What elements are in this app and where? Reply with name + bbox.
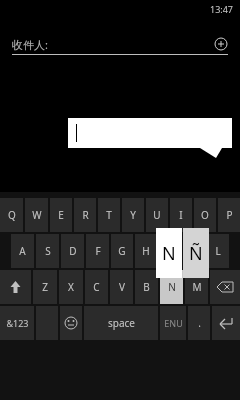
- button[interactable]: K: [183, 234, 205, 268]
- staticText: 13:47: [210, 3, 234, 15]
- staticText: T: [106, 208, 112, 222]
- button[interactable]: B: [135, 270, 158, 304]
- button[interactable]: L: [207, 234, 229, 268]
- staticText: H: [142, 244, 150, 258]
- staticText: L: [215, 244, 221, 258]
- staticText: R: [82, 208, 89, 222]
- staticText: M: [192, 280, 202, 294]
- button[interactable]: Backspace: [210, 270, 240, 304]
- staticText: O: [201, 208, 209, 222]
- button[interactable]: Q: [0, 198, 23, 232]
- button[interactable]: .: [188, 306, 210, 340]
- button[interactable]: R: [74, 198, 96, 232]
- staticText: G: [118, 244, 126, 258]
- staticText: space: [108, 316, 135, 330]
- staticText: U: [153, 208, 161, 222]
- button[interactable]: P: [218, 198, 240, 232]
- button[interactable]: Shift: [0, 270, 31, 304]
- button[interactable]: E: [50, 198, 72, 232]
- staticText: .: [198, 316, 201, 330]
- button[interactable]: U: [146, 198, 168, 232]
- button[interactable]: &123: [0, 306, 34, 340]
- button[interactable]: Y: [122, 198, 144, 232]
- staticText: N: [162, 241, 176, 266]
- staticText: &123: [6, 317, 29, 329]
- staticText: P: [226, 208, 233, 222]
- staticText: S: [45, 244, 51, 258]
- button[interactable]: space: [84, 306, 158, 340]
- staticText: B: [143, 280, 150, 294]
- staticText: F: [95, 244, 101, 258]
- button[interactable]: N: [156, 228, 182, 278]
- button[interactable]: C: [85, 270, 108, 304]
- button[interactable]: S: [36, 234, 59, 268]
- button[interactable]: J: [159, 234, 181, 268]
- staticText: J: [169, 244, 172, 258]
- button[interactable]: N: [160, 270, 183, 304]
- staticText: E: [58, 208, 64, 222]
- staticText: N: [168, 280, 176, 294]
- button[interactable]: V: [110, 270, 133, 304]
- button[interactable]: D: [61, 234, 84, 268]
- button[interactable]: I: [170, 198, 192, 232]
- staticText: Q: [8, 208, 16, 222]
- button[interactable]: ENU: [160, 306, 186, 340]
- staticText: C: [93, 280, 100, 294]
- staticText: ENU: [164, 317, 183, 329]
- button[interactable]: [68, 118, 232, 148]
- staticText: K: [191, 244, 198, 258]
- staticText: D: [69, 244, 77, 258]
- staticText: W: [32, 208, 42, 222]
- staticText: V: [119, 280, 125, 294]
- button[interactable]: Add recipient: [214, 37, 228, 51]
- staticText: X: [68, 280, 74, 294]
- staticText: Y: [130, 208, 136, 222]
- staticText: I: [179, 208, 183, 222]
- button[interactable]: Ñ: [183, 228, 209, 278]
- button[interactable]: M: [185, 270, 208, 304]
- staticText: A: [19, 244, 26, 258]
- button[interactable]: H: [135, 234, 157, 268]
- staticText: 收件人:: [12, 37, 48, 52]
- staticText: Z: [42, 280, 48, 294]
- button[interactable]: W: [25, 198, 48, 232]
- button[interactable]: T: [98, 198, 120, 232]
- button[interactable]: A: [11, 234, 34, 268]
- button[interactable]: G: [111, 234, 133, 268]
- staticText: Ñ: [189, 241, 203, 266]
- button[interactable]: Emoji: [60, 306, 82, 340]
- button[interactable]: X: [59, 270, 83, 304]
- button[interactable]: Z: [33, 270, 57, 304]
- button[interactable]: F: [86, 234, 109, 268]
- button[interactable]: 收件人:: [12, 34, 228, 54]
- button[interactable]: Enter: [212, 306, 240, 340]
- button[interactable]: O: [194, 198, 216, 232]
